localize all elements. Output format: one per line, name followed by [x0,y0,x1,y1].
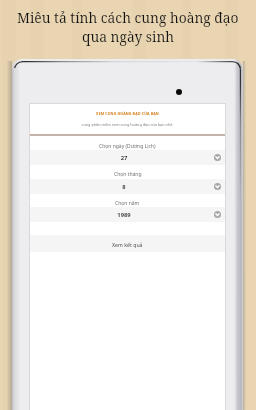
staticText: Miêu tả tính cách cung hoàng đạo [17,8,239,27]
button[interactable]: 8 [29,179,226,194]
staticText: 1989 [29,211,219,219]
staticText: Chọn tháng [114,171,142,178]
staticText: 8 [29,183,219,191]
staticText: XEM CUNG HOÀNG ĐẠO CỦA BẠN [29,111,226,116]
staticText: qua ngày sinh [82,27,175,46]
other: Mở danh sách [214,154,221,161]
staticText: cung phần mềm xem cung hoàng đạo của bạn… [29,122,226,127]
staticText: Chọn năm [115,200,140,207]
staticText: 27 [29,154,219,162]
button[interactable]: Xem kết quả [29,235,226,252]
button[interactable]: 1989 [29,207,226,222]
staticText: Chọn ngày (Dương Lịch) [99,143,156,150]
other: Mở danh sách [214,183,221,190]
staticText: Xem kết quả [112,242,143,249]
other: Mở danh sách [214,211,221,218]
button[interactable]: 27 [29,150,226,165]
